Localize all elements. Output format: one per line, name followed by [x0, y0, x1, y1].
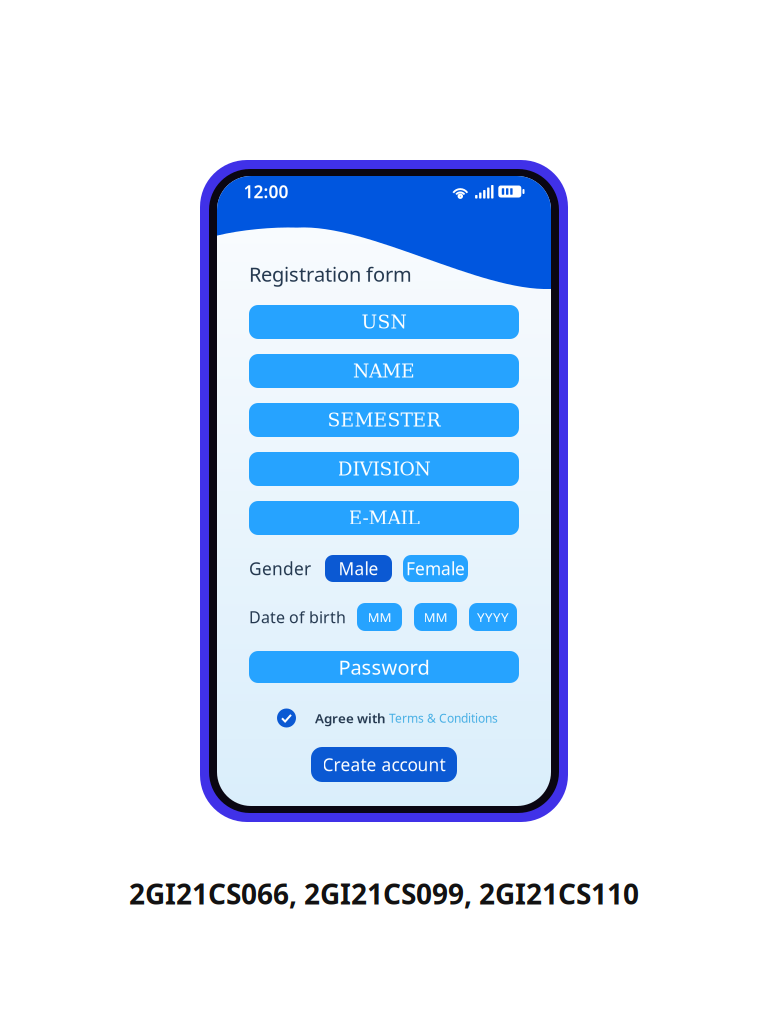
- button[interactable]: DIVISION: [249, 452, 519, 486]
- staticText: Female: [406, 557, 465, 580]
- button[interactable]: Male: [325, 555, 392, 582]
- staticText: 2GI21CS066, 2GI21CS099, 2GI21CS110: [129, 875, 639, 912]
- staticText: Terms & Conditions: [389, 710, 498, 726]
- button[interactable]: Create account: [311, 747, 457, 782]
- staticText: MM: [423, 608, 447, 626]
- staticText: Create account: [322, 753, 445, 776]
- button[interactable]: Female: [403, 555, 468, 582]
- staticText: Agree with: [315, 709, 386, 727]
- staticText: USN: [361, 311, 406, 333]
- button[interactable]: USN: [249, 305, 519, 339]
- staticText: Registration form: [249, 261, 412, 287]
- button[interactable]: Agree to terms checkbox: [277, 708, 296, 727]
- staticText: NAME: [353, 360, 415, 382]
- staticText: DIVISION: [337, 458, 430, 480]
- button[interactable]: E-MAIL: [249, 501, 519, 535]
- staticText: MM: [367, 608, 391, 626]
- staticText: YYYY: [477, 608, 509, 626]
- staticText: E-MAIL: [348, 507, 419, 529]
- button[interactable]: NAME: [249, 354, 519, 388]
- button[interactable]: SEMESTER: [249, 403, 519, 437]
- staticText: Date of birth: [249, 606, 346, 628]
- staticText: Password: [338, 654, 429, 680]
- staticText: Gender: [249, 557, 311, 580]
- button[interactable]: MM: [414, 603, 457, 631]
- button[interactable]: Agree with: [315, 709, 498, 727]
- button[interactable]: Password: [249, 651, 519, 683]
- staticText: 12:00: [243, 180, 288, 203]
- button[interactable]: MM: [357, 603, 402, 631]
- staticText: Male: [338, 557, 378, 580]
- button[interactable]: YYYY: [469, 603, 517, 631]
- staticText: SEMESTER: [327, 409, 440, 431]
